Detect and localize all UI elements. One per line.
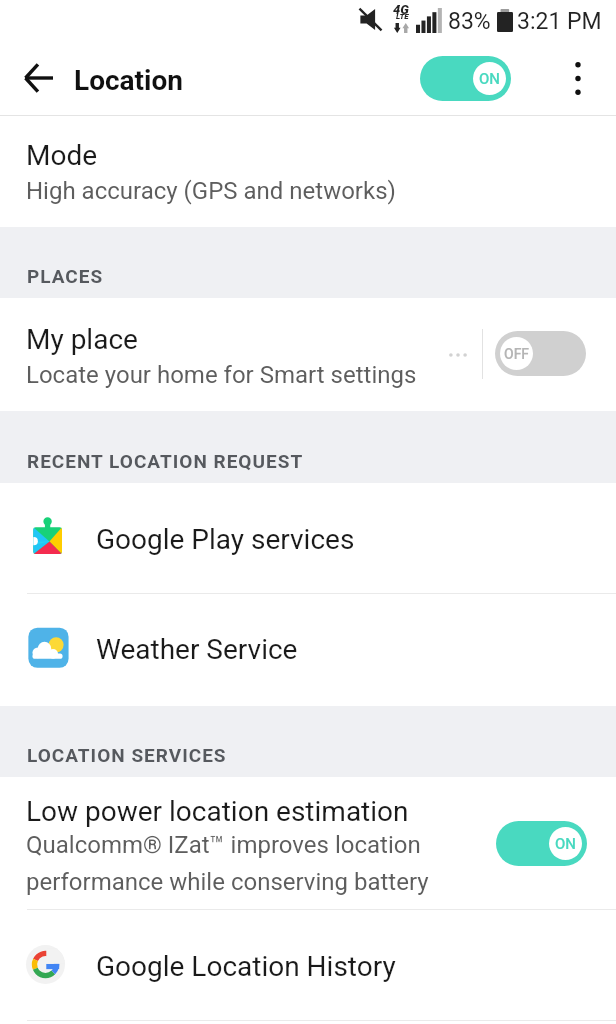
staticText: Locate your home for Smart settings [26, 361, 417, 389]
button[interactable]: On [420, 56, 511, 101]
staticText: OFF [504, 346, 530, 362]
button[interactable]: Mode [0, 116, 616, 227]
staticText: Google Play services [96, 523, 355, 556]
staticText: ON [555, 835, 576, 853]
staticText: Qualcomm® IZat™ improves location perfor… [26, 831, 429, 896]
staticText: LTE [396, 12, 409, 21]
staticText: ON [479, 70, 500, 88]
button[interactable]: More options [555, 55, 601, 101]
button[interactable]: My place [0, 298, 616, 411]
staticText: LOCATION SERVICES [27, 744, 227, 766]
staticText: PLACES [27, 265, 104, 287]
staticText: Google Location History [96, 950, 396, 983]
button[interactable]: Off [495, 331, 586, 376]
staticText: RECENT LOCATION REQUEST [27, 450, 304, 472]
staticText: Low power location estimation [26, 795, 409, 828]
button[interactable]: Low power location estimation [0, 777, 616, 909]
button[interactable]: Weather Service [0, 594, 616, 706]
staticText: Mode [26, 139, 98, 172]
button[interactable]: On [496, 821, 587, 866]
button[interactable]: Google Location History [0, 910, 616, 1020]
staticText: 3:21 PM [517, 8, 602, 35]
staticText: My place [26, 323, 138, 356]
staticText: 83% [448, 8, 491, 35]
button[interactable]: Back [12, 52, 64, 104]
button[interactable]: More options [435, 332, 480, 377]
staticText: Location [74, 64, 183, 97]
button[interactable]: Google Play services [0, 483, 616, 593]
staticText: High accuracy (GPS and networks) [26, 177, 396, 205]
staticText: 4G [393, 2, 409, 17]
staticText: Weather Service [96, 633, 298, 666]
